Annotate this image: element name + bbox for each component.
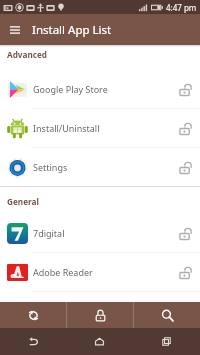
button[interactable]: Unlocked: [174, 155, 198, 179]
button[interactable]: Install/Uninstall: [0, 109, 200, 147]
staticText: Settings: [33, 161, 68, 173]
button[interactable]: Menu: [5, 20, 25, 40]
button[interactable]: Home: [66, 328, 133, 355]
button[interactable]: Lock: [67, 302, 133, 328]
staticText: Adobe Reader: [33, 266, 93, 278]
button[interactable]: Unlocked: [174, 260, 198, 284]
button[interactable]: Settings: [0, 148, 200, 186]
staticText: General: [7, 196, 39, 207]
button[interactable]: Search: [134, 302, 200, 328]
staticText: Install App List: [32, 22, 112, 38]
button[interactable]: Google Play Store: [0, 70, 200, 108]
staticText: Google Play Store: [33, 83, 108, 95]
staticText: Advanced: [7, 49, 48, 60]
button[interactable]: Unlocked: [174, 116, 198, 140]
button[interactable]: 7digital: [0, 214, 200, 252]
button[interactable]: Unlocked: [174, 221, 198, 245]
button[interactable]: Recents: [133, 328, 200, 355]
staticText: Install/Uninstall: [33, 122, 100, 134]
button[interactable]: Refresh: [0, 302, 66, 328]
button[interactable]: Unlocked: [174, 77, 198, 101]
button[interactable]: Back: [0, 328, 66, 355]
staticText: 7digital: [33, 227, 65, 239]
staticText: 4:47 pm: [166, 2, 197, 13]
button[interactable]: Adobe Reader: [0, 253, 200, 291]
